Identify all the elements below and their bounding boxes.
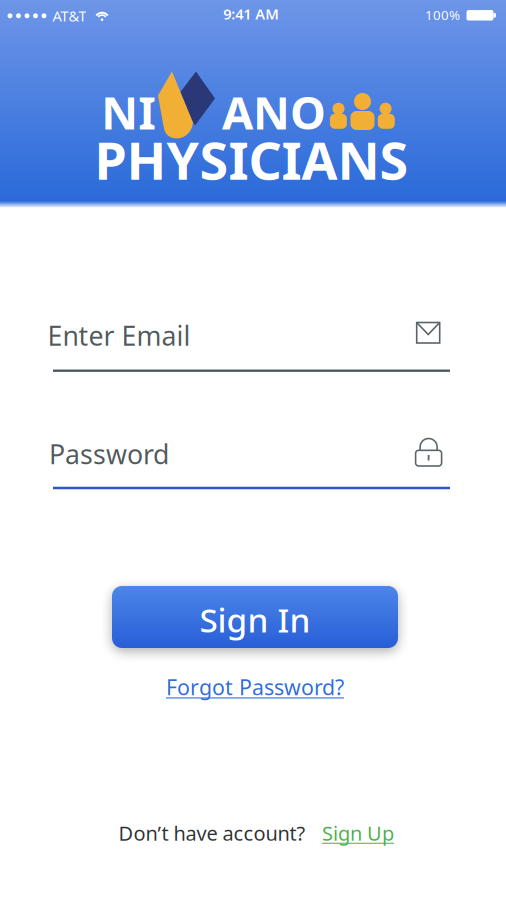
staticText: Password [49, 436, 169, 471]
staticText: Enter Email [47, 318, 190, 353]
button[interactable]: Sign Up [322, 820, 394, 846]
staticText: 100% [425, 6, 460, 24]
button[interactable]: Enter Email [53, 316, 450, 372]
button[interactable]: Forgot Password? [166, 673, 344, 701]
staticText: Sign In [199, 597, 310, 642]
staticText: Don’t have account? [118, 820, 305, 846]
staticText: PHYSICIANS [94, 125, 408, 194]
staticText: NI [101, 82, 156, 142]
staticText: ANO [222, 82, 326, 142]
staticText: AT&T [52, 6, 86, 26]
button[interactable]: Sign In [112, 586, 398, 648]
staticText: 9:41 AM [223, 4, 279, 24]
staticText: Forgot Password? [166, 673, 344, 701]
staticText: Sign Up [322, 820, 394, 846]
button[interactable]: Password [53, 434, 450, 490]
